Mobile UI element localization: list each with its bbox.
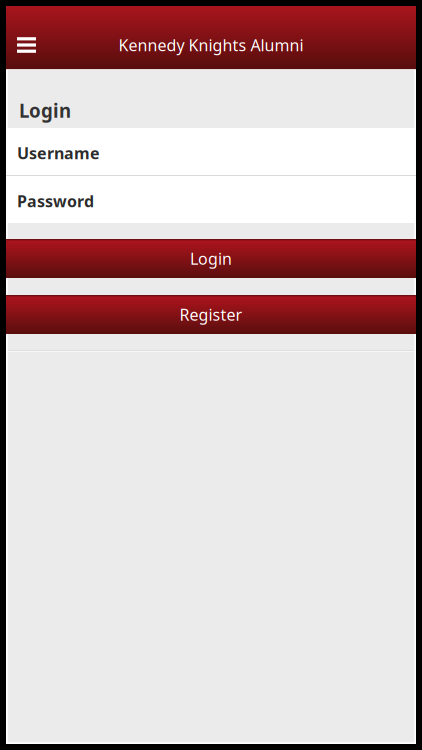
button[interactable]: Login	[6, 239, 416, 278]
staticText: Username	[17, 142, 100, 164]
staticText: Login	[190, 248, 232, 269]
staticText: Kennedy Knights Alumni	[118, 34, 303, 56]
staticText: Login	[19, 98, 71, 123]
button[interactable]: Password	[6, 176, 416, 223]
button[interactable]: Register	[6, 295, 416, 334]
button[interactable]: Username	[6, 128, 416, 175]
staticText: Password	[17, 190, 94, 212]
staticText: Register	[179, 304, 242, 325]
button[interactable]: Menu	[6, 25, 50, 65]
